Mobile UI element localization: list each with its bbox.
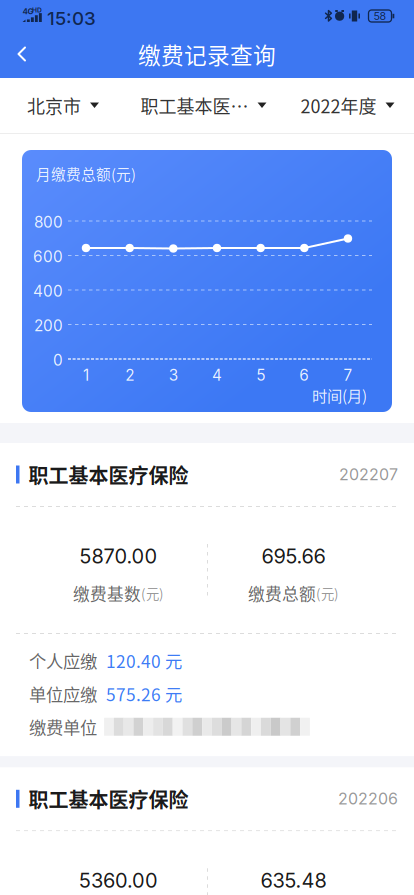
staticText: HD — [32, 6, 42, 14]
staticText: 1 — [83, 366, 89, 385]
staticText: 5 — [256, 366, 265, 385]
staticText: 4G — [22, 6, 33, 16]
staticText: 职工基本医疗保险 — [28, 460, 188, 489]
button[interactable]: 北京市 — [0, 78, 126, 133]
staticText: 缴费记录查询 — [138, 38, 276, 70]
staticText: 6 — [299, 366, 309, 385]
staticText: 2 — [125, 366, 134, 385]
staticText: 202206 — [338, 789, 398, 808]
staticText: 400 — [33, 282, 63, 301]
staticText: 800 — [34, 213, 63, 232]
staticText: (元) — [141, 584, 164, 603]
staticText: 4 — [212, 366, 222, 385]
staticText: (元) — [316, 584, 339, 603]
staticText: 职工基本医疗保险 — [28, 784, 188, 813]
staticText: 7 — [343, 366, 352, 385]
staticText: 200 — [34, 316, 63, 335]
staticText: 缴费单位 — [29, 714, 97, 739]
staticText: 15:03 — [47, 7, 96, 30]
staticText: 缴费基数 — [73, 581, 141, 605]
button[interactable]: 返回 — [0, 30, 44, 78]
staticText: 单位应缴 — [29, 681, 97, 706]
staticText: 575.26 元 — [106, 681, 182, 706]
staticText: 600 — [33, 247, 63, 266]
staticText: 5870.00 — [79, 544, 157, 568]
staticText: 时间(月) — [312, 384, 367, 406]
staticText: 3 — [169, 366, 178, 385]
staticText: 个人应缴 — [29, 648, 97, 673]
staticText: 2022年度 — [300, 92, 376, 119]
staticText: 缴费总额 — [248, 581, 316, 605]
staticText: 月缴费总额(元) — [36, 163, 136, 184]
staticText: 202207 — [339, 465, 398, 484]
staticText: 5360.00 — [79, 868, 158, 892]
staticText: 695.66 — [261, 544, 325, 568]
button[interactable]: 2022年度 — [281, 78, 414, 133]
staticText: 0 — [53, 351, 63, 370]
staticText: 58 — [373, 9, 386, 22]
staticText: 北京市 — [27, 92, 81, 119]
button[interactable]: 职工基本医… — [126, 78, 281, 133]
staticText: 635.48 — [260, 868, 326, 892]
staticText: 120.40 元 — [106, 648, 182, 673]
staticText: 职工基本医… — [140, 92, 248, 119]
